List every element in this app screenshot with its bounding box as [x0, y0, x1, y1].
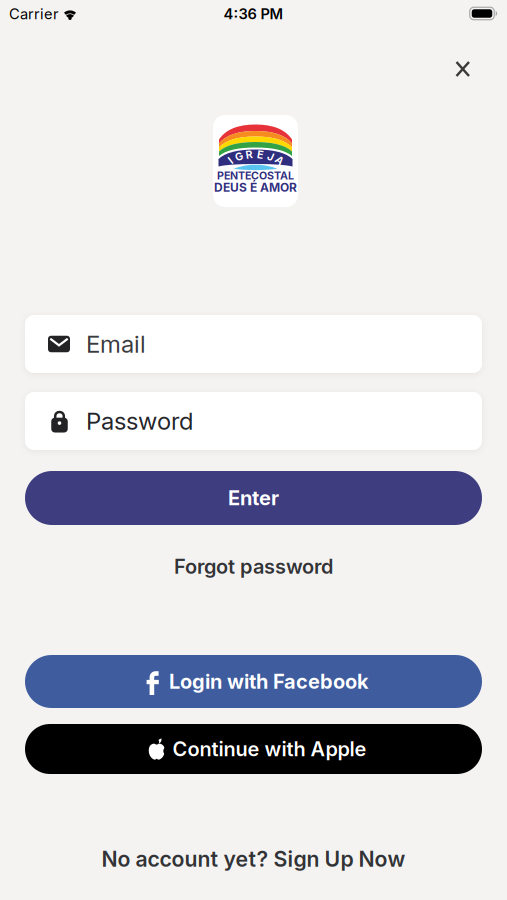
button[interactable]: No account yet? Sign Up Now: [101, 846, 405, 872]
staticText: A: [275, 154, 283, 167]
button[interactable]: Login with Facebook: [25, 655, 482, 708]
staticText: No account yet? Sign Up Now: [101, 846, 405, 872]
staticText: R: [245, 148, 252, 161]
staticText: J: [267, 150, 273, 163]
button[interactable]: Close: [452, 58, 473, 80]
button[interactable]: Forgot password: [174, 555, 333, 578]
button[interactable]: Continue with Apple: [25, 724, 482, 774]
staticText: Continue with Apple: [172, 737, 366, 761]
staticText: Enter: [228, 486, 279, 510]
staticText: Carrier: [9, 5, 59, 23]
staticText: PENTECOSTAL: [217, 169, 294, 182]
staticText: DEUS É AMOR: [214, 180, 297, 195]
staticText: Email: [86, 330, 146, 358]
staticText: 4:36 PM: [223, 5, 283, 23]
button[interactable]: Enter: [25, 471, 482, 525]
button[interactable]: Email: [25, 315, 482, 373]
staticText: I: [229, 154, 232, 167]
staticText: Password: [86, 407, 193, 435]
staticText: Forgot password: [174, 555, 333, 578]
button[interactable]: Password: [25, 392, 482, 450]
staticText: Login with Facebook: [169, 670, 369, 693]
staticText: G: [235, 150, 243, 163]
staticText: E: [257, 148, 263, 161]
